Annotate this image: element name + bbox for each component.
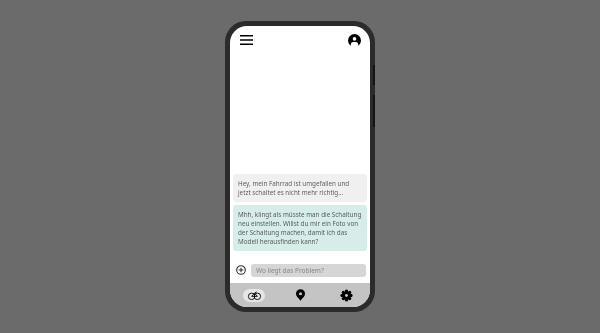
button[interactable]: Hey, mein Fahrrad ist umgefallen und jet…	[233, 174, 367, 202]
button[interactable]: Wo liegt das Problem?	[251, 264, 366, 277]
button[interactable]: Add attachment	[234, 263, 248, 277]
button[interactable]: Menu	[237, 31, 255, 49]
staticText: Wo liegt das Problem?	[256, 266, 324, 275]
button[interactable]: Location	[278, 283, 322, 307]
button[interactable]: Mhh, klingt als müsste man die Schaltung…	[233, 205, 367, 251]
staticText: Mhh, klingt als müsste man die Schaltung…	[238, 210, 362, 246]
button[interactable]: Bike	[232, 283, 276, 307]
button[interactable]: Account	[345, 31, 363, 49]
button[interactable]: Settings	[324, 283, 368, 307]
staticText: Hey, mein Fahrrad ist umgefallen und jet…	[238, 179, 362, 197]
